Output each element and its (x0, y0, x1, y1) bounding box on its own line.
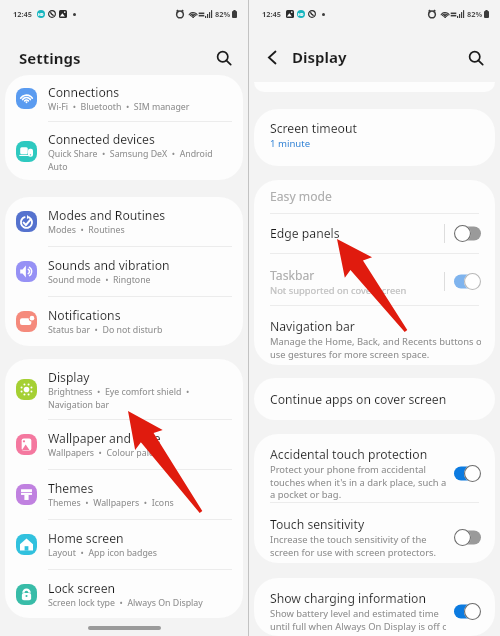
button[interactable]: Easy mode (254, 180, 495, 213)
staticText: Sounds and vibration (48, 257, 170, 274)
button[interactable]: Modes and Routines (5, 197, 243, 246)
staticText: Not supported on cover screen (270, 284, 407, 297)
button[interactable]: Switch off (454, 529, 481, 546)
staticText: 82% (467, 9, 483, 19)
staticText: Connected devices (48, 131, 155, 148)
staticText: Navigation bar (270, 318, 355, 335)
staticText: Touch sensitivity (270, 516, 365, 533)
button[interactable]: Navigation bar (254, 306, 495, 365)
button[interactable]: Back (259, 44, 285, 70)
button[interactable]: Sounds and vibration (5, 247, 243, 296)
staticText: Quick Share • Samsung DeX • Android Auto (48, 148, 213, 172)
staticText: Status bar • Do not disturb (48, 324, 163, 336)
staticText: Taskbar (270, 267, 315, 284)
staticText: Increase the touch sensitivity of the sc… (270, 533, 437, 558)
button[interactable]: Connected devices (5, 122, 243, 180)
staticText: Themes • Wallpapers • Icons (48, 497, 174, 509)
staticText: Connections (48, 84, 120, 101)
staticText: Display (292, 47, 347, 67)
staticText: Wallpaper and style (48, 430, 161, 447)
button[interactable]: Home screen (5, 520, 243, 569)
staticText: Layout • App icon badges (48, 547, 158, 559)
button[interactable]: Show charging information (254, 578, 495, 636)
staticText: HD (298, 12, 304, 17)
staticText: Sound mode • Ringtone (48, 274, 151, 286)
button[interactable]: Edge panels (254, 214, 495, 253)
staticText: Show charging information (270, 590, 427, 607)
staticText: HD (38, 12, 44, 17)
button[interactable]: Notifications (5, 297, 243, 346)
button[interactable]: Taskbar (254, 254, 495, 305)
button[interactable]: Continue apps on cover screen (254, 378, 495, 420)
button[interactable]: Wallpaper and style (5, 420, 243, 469)
staticText: Home screen (48, 530, 124, 547)
button[interactable]: Accidental touch protection (254, 434, 495, 502)
staticText: Protect your phone from accidental touch… (270, 463, 446, 500)
staticText: Themes (48, 480, 94, 497)
staticText: Modes • Routines (48, 224, 125, 236)
staticText: Wi-Fi • Bluetooth • SIM manager (48, 101, 190, 113)
button[interactable]: Switch on (454, 465, 481, 482)
staticText: Show battery level and estimated time un… (270, 607, 446, 632)
staticText: Modes and Routines (48, 207, 166, 224)
button[interactable]: Display (5, 359, 243, 419)
button[interactable]: Connections (5, 75, 243, 121)
button[interactable]: Search (463, 45, 489, 71)
staticText: 12:45 (13, 9, 32, 19)
staticText: 82% (215, 9, 231, 19)
staticText: 1 minute (270, 137, 311, 150)
staticText: Accidental touch protection (270, 446, 428, 463)
button[interactable]: Lock screen (5, 570, 243, 618)
button[interactable]: Touch sensitivity (254, 503, 495, 563)
staticText: Wallpapers • Colour palette (48, 447, 166, 459)
staticText: Notifications (48, 307, 121, 324)
staticText: Screen lock type • Always On Display (48, 597, 203, 609)
staticText: Display (48, 369, 90, 386)
button[interactable]: Screen timeout (254, 109, 495, 166)
staticText: Lock screen (48, 580, 116, 597)
button[interactable]: Switch on (454, 273, 481, 290)
staticText: Easy mode (270, 188, 332, 205)
button[interactable]: Search (211, 45, 237, 71)
button[interactable]: Switch off (454, 225, 481, 242)
staticText: Continue apps on cover screen (270, 391, 447, 408)
button[interactable]: Themes (5, 470, 243, 519)
staticText: Screen timeout (270, 120, 357, 137)
staticText: Brightness • Eye comfort shield • Naviga… (48, 386, 190, 410)
button[interactable]: Switch on (454, 603, 481, 620)
staticText: Edge panels (270, 225, 340, 242)
staticText: Settings (19, 48, 81, 68)
staticText: 12:45 (262, 9, 281, 19)
staticText: Manage the Home, Back, and Recents butto… (270, 335, 481, 360)
